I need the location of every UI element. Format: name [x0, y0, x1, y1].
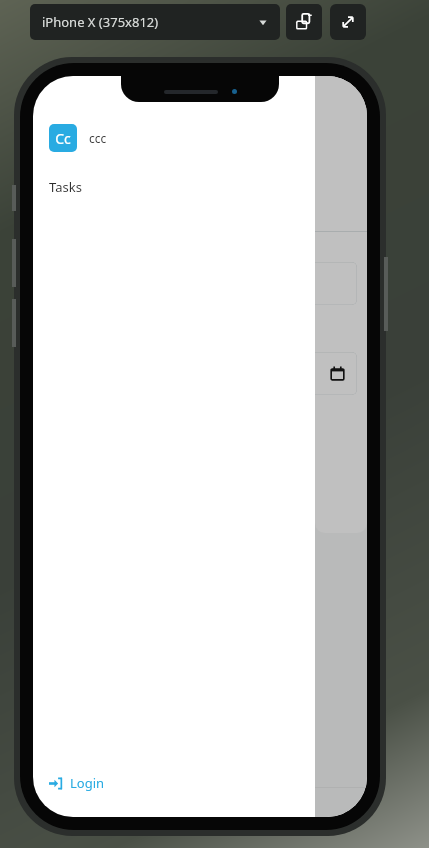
button[interactable]: Expand: [330, 4, 366, 40]
button[interactable]: iPhone X (375x812): [30, 4, 280, 40]
button[interactable]: Rotate device: [286, 4, 322, 40]
staticText: Tasks: [49, 178, 82, 196]
button[interactable]: Login: [33, 763, 121, 803]
button[interactable]: Cc: [49, 124, 107, 152]
staticText: Cc: [55, 129, 71, 148]
staticText: iPhone X (375x812): [42, 13, 159, 31]
staticText: ccc: [89, 130, 107, 146]
staticText: Login: [70, 774, 105, 792]
button[interactable]: Tasks: [33, 174, 367, 200]
